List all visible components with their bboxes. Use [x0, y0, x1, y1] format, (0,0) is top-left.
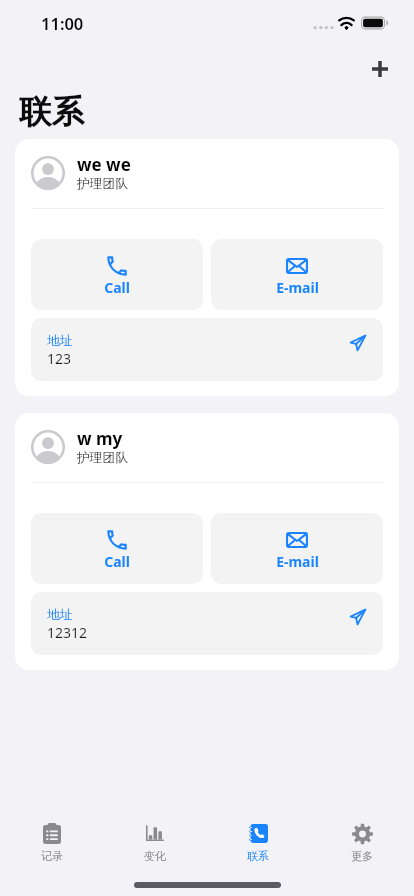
staticText: 联系 [247, 849, 269, 863]
button[interactable]: 联系 [206, 816, 310, 835]
other: Navigate [350, 335, 366, 351]
button[interactable]: Add contact [358, 47, 402, 91]
button[interactable]: E-mail [211, 513, 383, 584]
staticText: 12312 [47, 623, 88, 642]
staticText: 护理团队 [77, 176, 129, 192]
staticText: E-mail [276, 552, 319, 571]
staticText: 地址 [47, 607, 73, 623]
button[interactable]: Call [31, 239, 203, 310]
button[interactable]: 地址 [31, 318, 383, 381]
staticText: 变化 [144, 849, 166, 863]
staticText: 123 [47, 349, 72, 368]
staticText: 联系 [19, 92, 84, 133]
staticText: 护理团队 [77, 450, 129, 466]
button[interactable]: Call [31, 513, 203, 584]
staticText: E-mail [276, 278, 319, 297]
button[interactable]: 地址 [31, 592, 383, 655]
staticText: we we [77, 153, 131, 176]
staticText: 11:00 [41, 12, 84, 34]
staticText: 记录 [41, 849, 63, 863]
staticText: 地址 [47, 333, 73, 349]
staticText: Call [104, 552, 130, 571]
staticText: 更多 [351, 849, 373, 863]
button[interactable]: 变化 [103, 816, 206, 832]
other: Navigate [350, 609, 366, 625]
staticText: w my [77, 427, 123, 450]
button[interactable]: E-mail [211, 239, 383, 310]
button[interactable]: 记录 [0, 816, 103, 837]
button[interactable]: 更多 [310, 816, 414, 838]
staticText: Call [104, 278, 130, 297]
